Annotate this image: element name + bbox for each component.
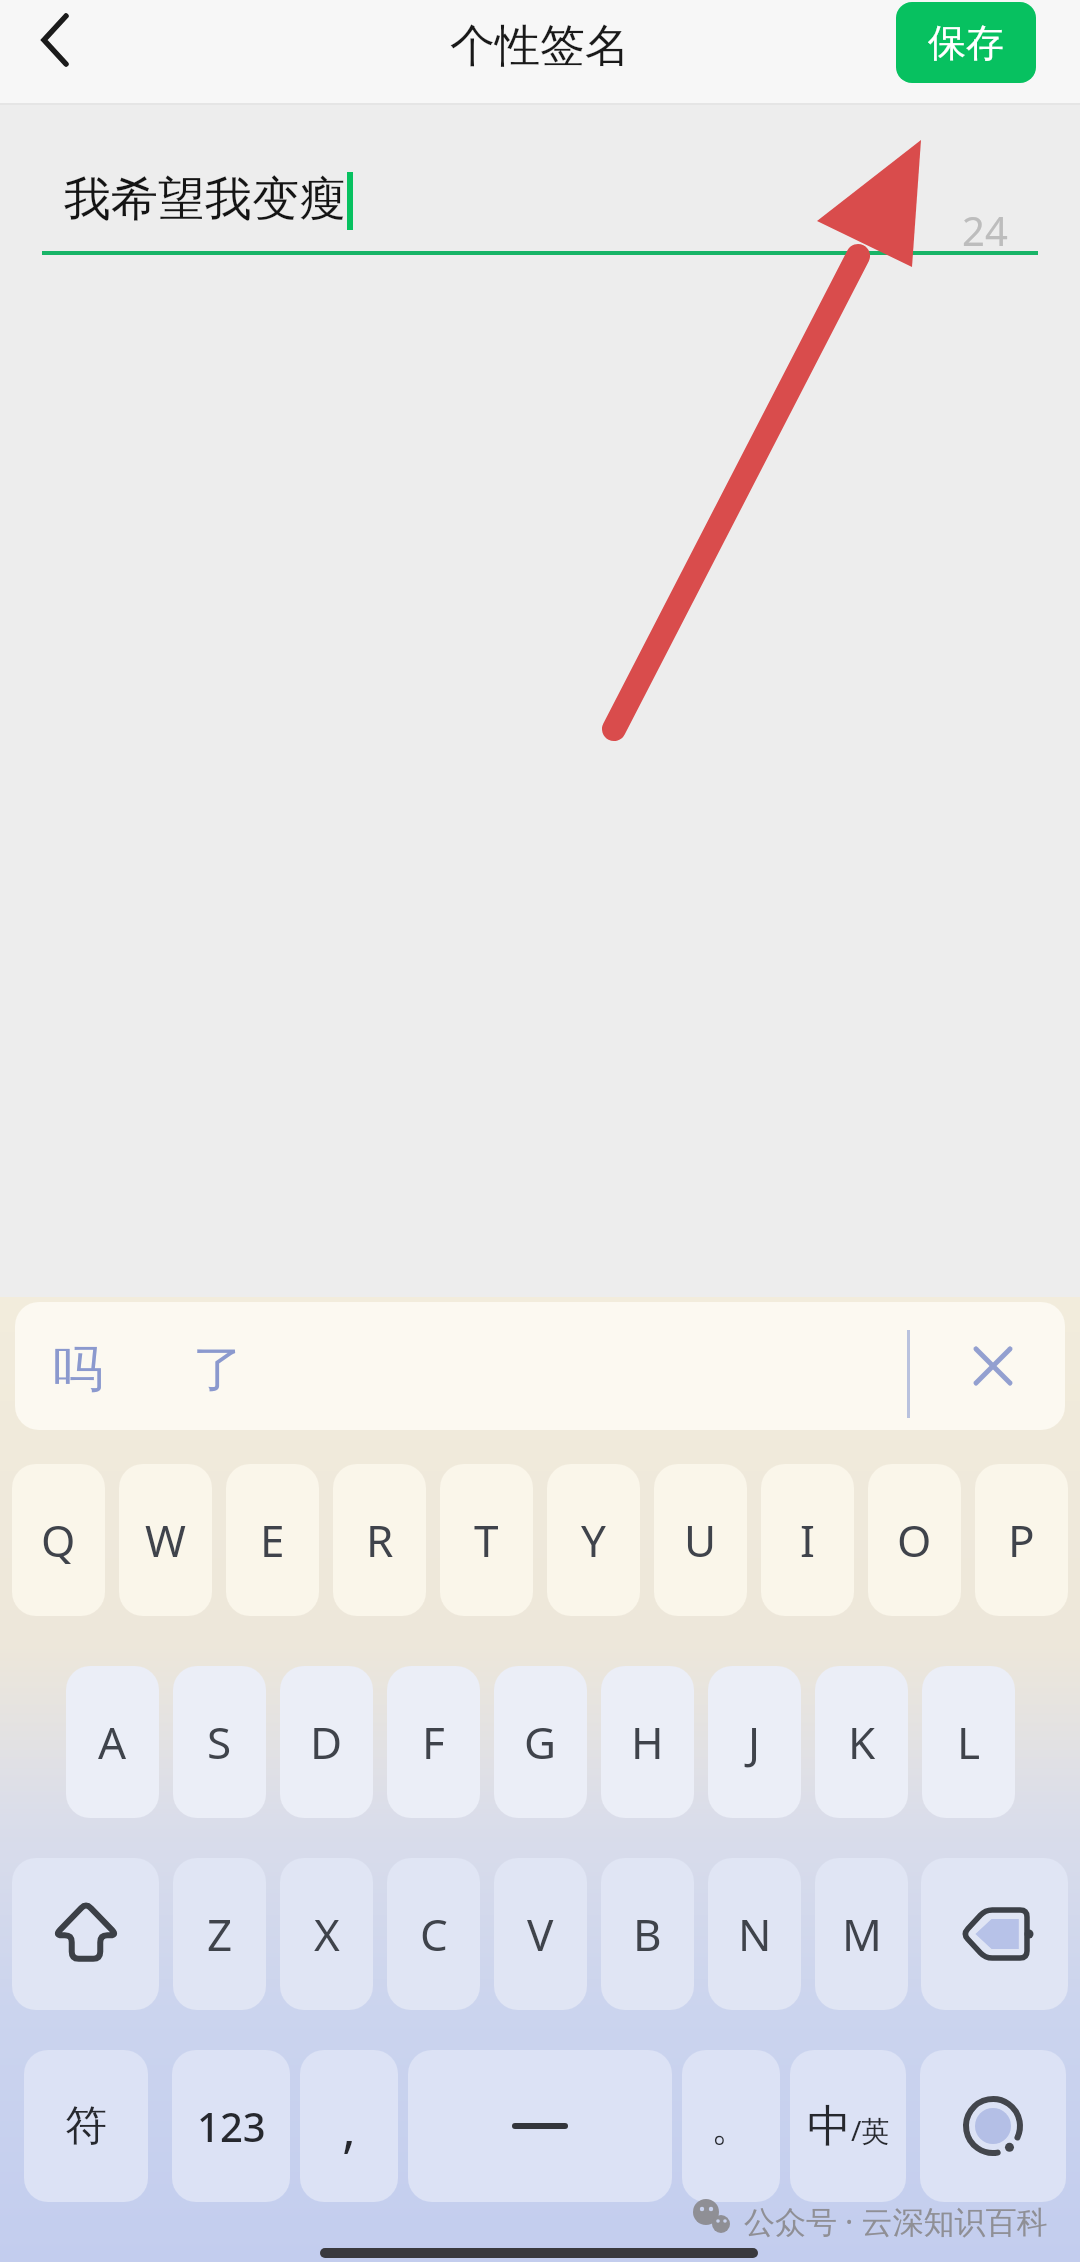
button[interactable]: S bbox=[173, 1666, 266, 1818]
staticText: M bbox=[842, 1904, 882, 1964]
staticText: E bbox=[260, 1510, 285, 1570]
button[interactable]: , bbox=[300, 2050, 398, 2202]
staticText: J bbox=[748, 1712, 761, 1772]
button[interactable]: 保存 bbox=[896, 2, 1036, 83]
staticText: L bbox=[957, 1712, 981, 1772]
button[interactable]: O bbox=[868, 1464, 961, 1616]
button[interactable]: C bbox=[387, 1858, 480, 2010]
staticText: K bbox=[848, 1712, 876, 1772]
staticText: C bbox=[420, 1904, 448, 1964]
staticText: D bbox=[310, 1712, 343, 1772]
button[interactable]: Q bbox=[12, 1464, 105, 1616]
button[interactable]: E bbox=[226, 1464, 319, 1616]
staticText: Z bbox=[207, 1904, 233, 1964]
staticText: I bbox=[800, 1510, 815, 1570]
button[interactable]: V bbox=[494, 1858, 587, 2010]
staticText: F bbox=[422, 1712, 445, 1772]
staticText: 我希望我变瘦 bbox=[64, 170, 346, 229]
staticText: X bbox=[314, 1904, 340, 1964]
staticText: 。 bbox=[711, 2101, 751, 2151]
button[interactable]: 吗 bbox=[15, 1302, 1065, 1430]
button[interactable]: M bbox=[815, 1858, 908, 2010]
staticText: U bbox=[684, 1510, 717, 1570]
button[interactable]: Y bbox=[547, 1464, 640, 1616]
staticText: 24 bbox=[962, 203, 1008, 257]
staticText: 保存 bbox=[928, 19, 1004, 67]
staticText: O bbox=[897, 1510, 932, 1570]
button[interactable] bbox=[920, 2050, 1066, 2202]
button[interactable] bbox=[408, 2050, 672, 2202]
button[interactable]: L bbox=[922, 1666, 1015, 1818]
button[interactable]: P bbox=[975, 1464, 1068, 1616]
staticText: 符 bbox=[65, 2100, 107, 2153]
button[interactable] bbox=[921, 1858, 1068, 2010]
staticText: , bbox=[342, 2091, 356, 2162]
staticText: S bbox=[207, 1712, 232, 1772]
button[interactable]: T bbox=[440, 1464, 533, 1616]
staticText: 吗 bbox=[53, 1338, 103, 1401]
button[interactable] bbox=[24, 0, 84, 80]
button[interactable]: X bbox=[280, 1858, 373, 2010]
staticText: N bbox=[738, 1904, 772, 1964]
staticText: 中/英 bbox=[807, 2099, 890, 2154]
staticText: 个性签名 bbox=[450, 18, 630, 75]
button[interactable]: D bbox=[280, 1666, 373, 1818]
button[interactable]: 。 bbox=[682, 2050, 780, 2202]
staticText: Q bbox=[41, 1510, 76, 1570]
staticText: Y bbox=[581, 1510, 606, 1570]
staticText: 123 bbox=[197, 2099, 266, 2153]
staticText: A bbox=[98, 1712, 127, 1772]
button[interactable] bbox=[12, 1858, 159, 2010]
button[interactable]: Z bbox=[173, 1858, 266, 2010]
staticText: 公众号 · 云深知识百科 bbox=[744, 2200, 1048, 2242]
button[interactable]: R bbox=[333, 1464, 426, 1616]
staticText: V bbox=[527, 1904, 554, 1964]
button[interactable]: K bbox=[815, 1666, 908, 1818]
button[interactable]: 中/英 bbox=[790, 2050, 906, 2202]
staticText: P bbox=[1008, 1510, 1035, 1570]
staticText: 了 bbox=[193, 1338, 243, 1401]
staticText: G bbox=[524, 1712, 557, 1772]
staticText: H bbox=[631, 1712, 664, 1772]
button[interactable]: H bbox=[601, 1666, 694, 1818]
staticText: R bbox=[366, 1510, 394, 1570]
button[interactable]: N bbox=[708, 1858, 801, 2010]
button[interactable]: 123 bbox=[172, 2050, 290, 2202]
staticText: T bbox=[474, 1510, 499, 1570]
button[interactable]: A bbox=[66, 1666, 159, 1818]
button[interactable]: F bbox=[387, 1666, 480, 1818]
button[interactable]: I bbox=[761, 1464, 854, 1616]
button[interactable]: U bbox=[654, 1464, 747, 1616]
button[interactable]: J bbox=[708, 1666, 801, 1818]
button[interactable]: 符 bbox=[24, 2050, 148, 2202]
button[interactable]: G bbox=[494, 1666, 587, 1818]
button[interactable]: B bbox=[601, 1858, 694, 2010]
button[interactable]: W bbox=[119, 1464, 212, 1616]
staticText: W bbox=[145, 1510, 186, 1570]
staticText: B bbox=[633, 1904, 662, 1964]
